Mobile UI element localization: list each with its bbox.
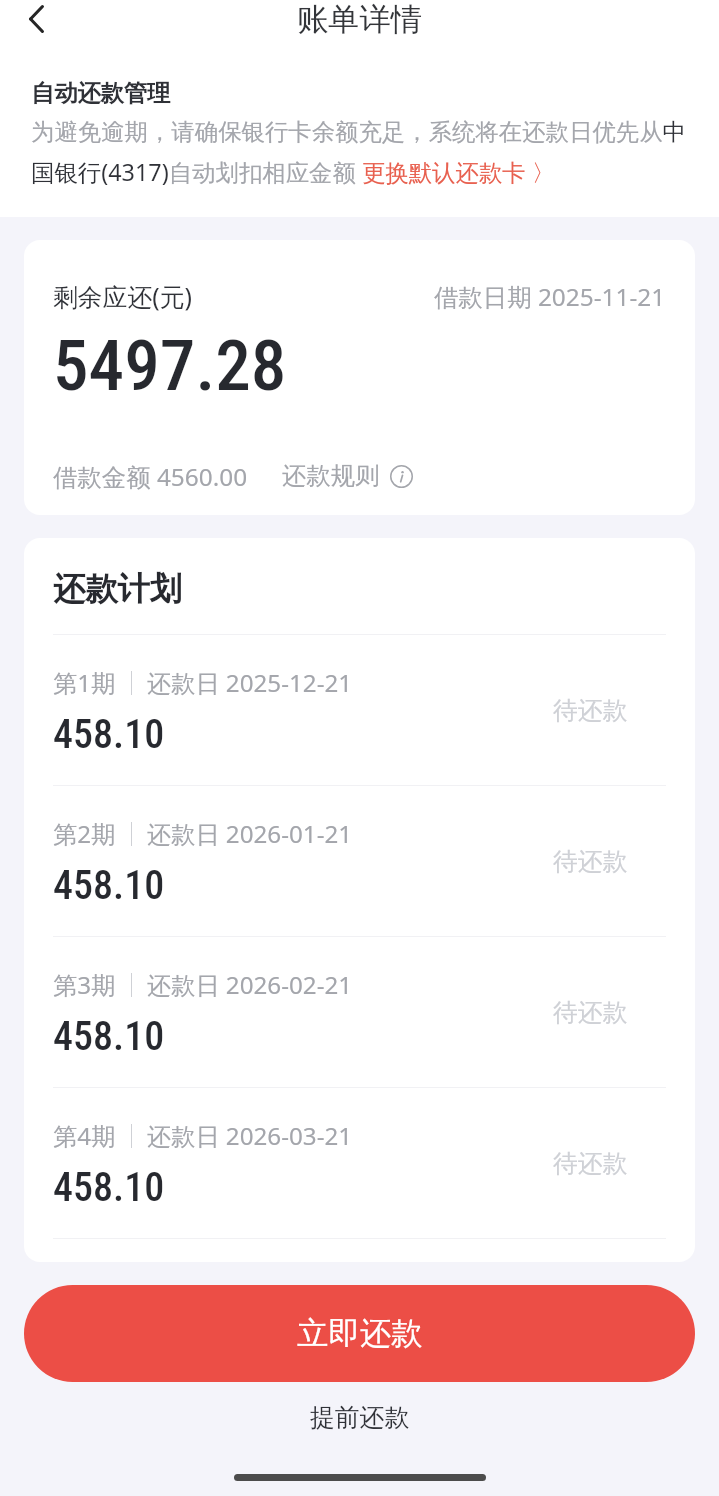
button[interactable]: Back [10, 0, 62, 45]
staticText: 待还款 [553, 695, 628, 726]
staticText: 458.10 [53, 1013, 165, 1060]
staticText: 458.10 [53, 1164, 165, 1211]
staticText: 借款日期 2025-11-21 [434, 280, 666, 313]
staticText: 还款日 2026-03-21 [147, 1119, 353, 1152]
staticText: 还款计划 [53, 569, 182, 610]
button[interactable]: 更换默认还款卡 〉 [362, 156, 556, 188]
staticText: 458.10 [53, 862, 165, 909]
staticText: 第1期 [53, 666, 116, 699]
staticText: 账单详情 [297, 0, 422, 39]
button[interactable]: 第4期 [53, 1088, 666, 1238]
staticText: 还款日 2026-01-21 [147, 817, 353, 850]
staticText: 还款规则 [282, 461, 380, 492]
button[interactable]: 提前还款 [262, 1390, 458, 1445]
staticText: 5497.28 [53, 324, 287, 407]
button[interactable]: 第1期 [53, 635, 666, 785]
staticText: 自动还款管理 [31, 79, 171, 108]
staticText: 国银行(4317)自动划扣相应金额 [31, 156, 362, 188]
staticText: 第3期 [53, 968, 116, 1001]
button[interactable]: 第2期 [53, 786, 666, 936]
staticText: 立即还款 [297, 1314, 423, 1354]
staticText: 剩余应还(元) [53, 279, 192, 313]
staticText: 待还款 [553, 1148, 628, 1179]
staticText: 第4期 [53, 1119, 116, 1152]
button[interactable]: 第3期 [53, 937, 666, 1087]
staticText: 458.10 [53, 711, 165, 758]
staticText: 第2期 [53, 817, 116, 850]
staticText: 为避免逾期，请确保银行卡余额充足，系统将在还款日优先从中 [31, 117, 686, 146]
button[interactable]: 立即还款 [24, 1285, 695, 1382]
staticText: 借款金额 4560.00 [53, 460, 248, 493]
staticText: 待还款 [553, 846, 628, 877]
button[interactable]: 还款规则 [282, 461, 413, 492]
staticText: 还款日 2025-12-21 [147, 666, 353, 699]
staticText: 待还款 [553, 997, 628, 1028]
staticText: 还款日 2026-02-21 [147, 968, 353, 1001]
